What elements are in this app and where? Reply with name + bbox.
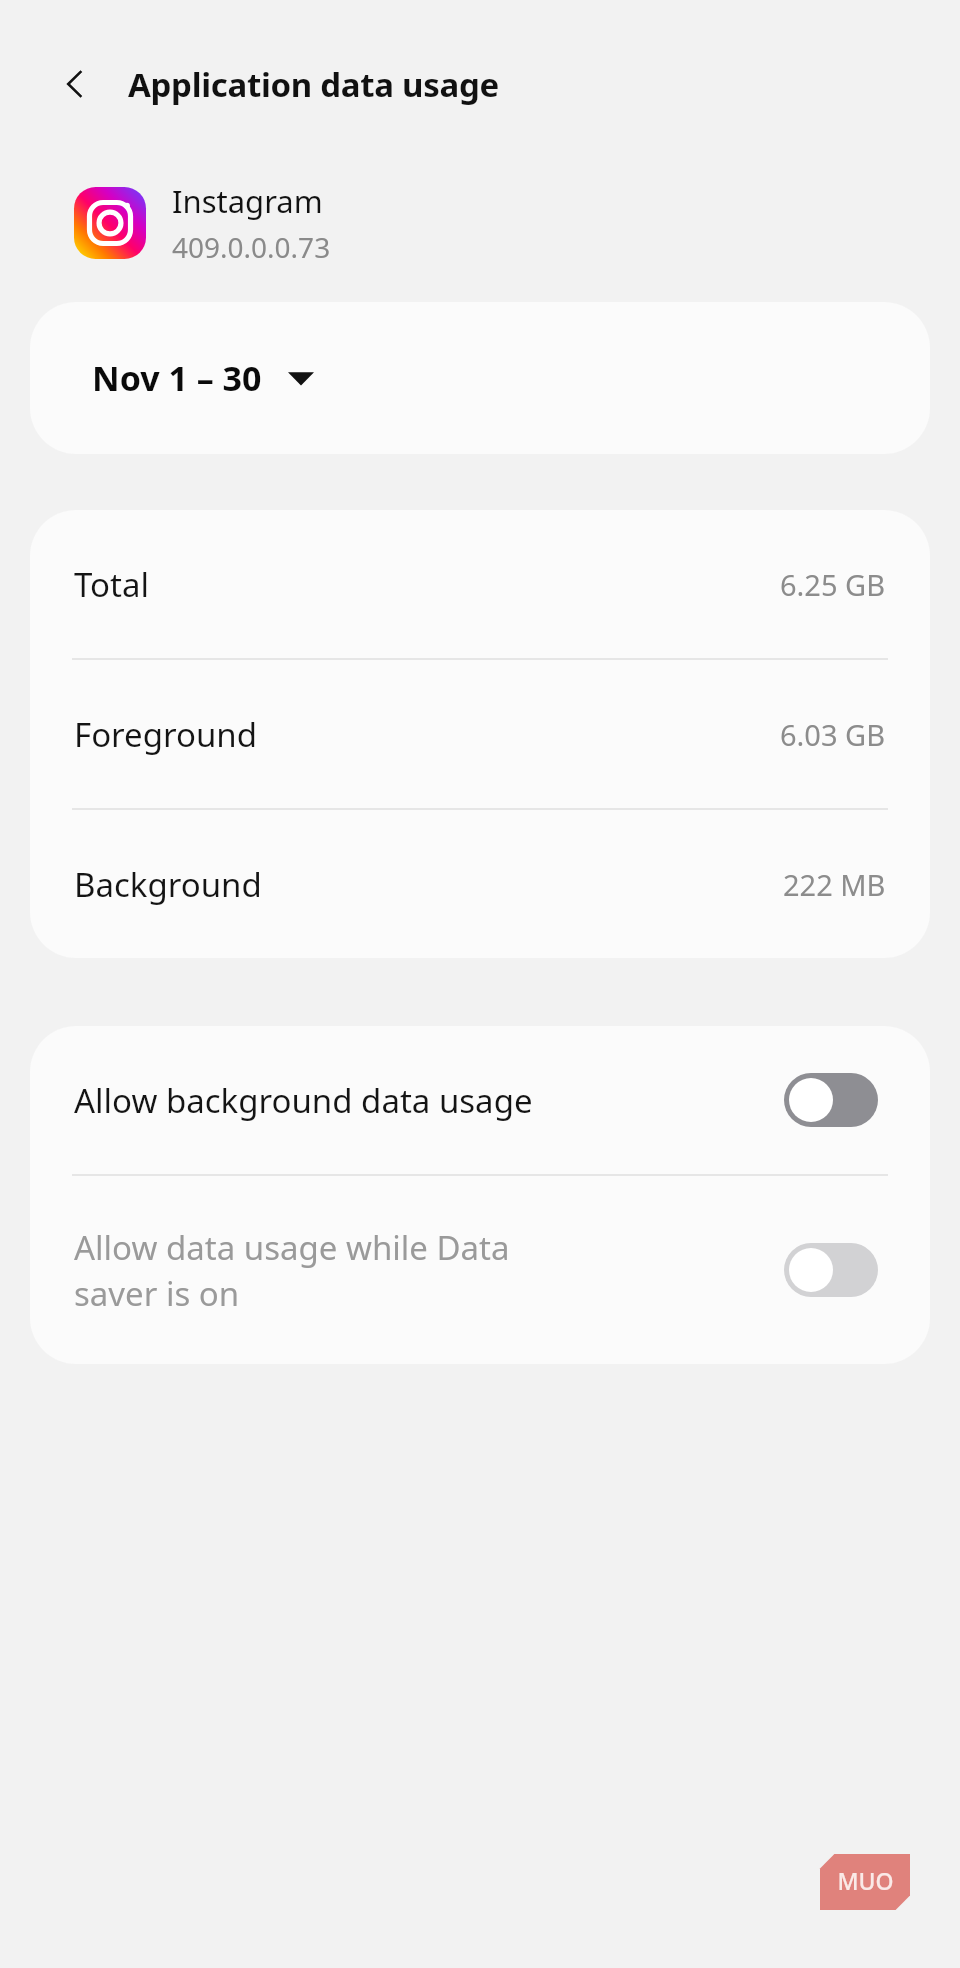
button[interactable]: Allow data usage while Data saver is on xyxy=(30,1176,930,1364)
staticText: Allow background data usage xyxy=(74,1078,764,1123)
staticText: 6.03 GB xyxy=(780,715,886,754)
staticText: Allow data usage while Data saver is on xyxy=(74,1225,764,1316)
button[interactable]: Background xyxy=(30,810,930,958)
button[interactable]: Total xyxy=(30,510,930,658)
staticText: 222 MB xyxy=(783,865,886,904)
staticText: MUO xyxy=(837,1865,894,1896)
staticText: Total xyxy=(74,562,149,607)
button[interactable]: Foreground xyxy=(30,660,930,808)
staticText: Instagram xyxy=(172,180,323,222)
button[interactable]: Toggle xyxy=(784,1073,878,1127)
button[interactable]: Back xyxy=(48,56,104,112)
staticText: Foreground xyxy=(74,712,257,757)
button[interactable]: Nov 1 – 30 xyxy=(30,302,930,454)
staticText: Background xyxy=(74,862,262,907)
staticText: Application data usage xyxy=(128,62,499,107)
button[interactable]: Toggle xyxy=(784,1243,878,1297)
staticText: Nov 1 – 30 xyxy=(92,355,262,401)
staticText: 6.25 GB xyxy=(780,565,886,604)
staticText: 409.0.0.0.73 xyxy=(172,228,331,266)
button[interactable]: Allow background data usage xyxy=(30,1026,930,1174)
